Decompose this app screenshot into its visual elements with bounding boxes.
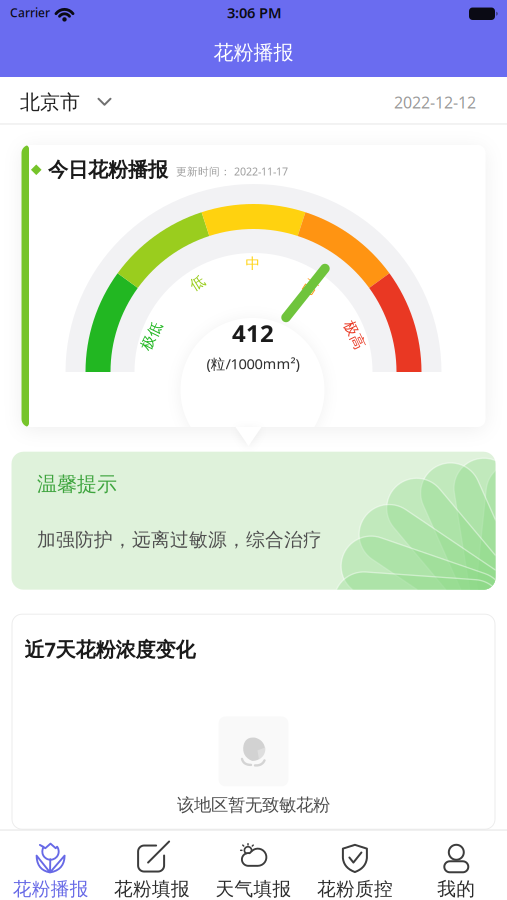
button[interactable]: 我的 xyxy=(406,830,507,900)
staticText: 温馨提示 xyxy=(37,472,117,496)
staticText: (粒/1000mm²) xyxy=(206,354,299,373)
staticText: 412 xyxy=(232,317,274,349)
staticText: 极高 xyxy=(339,326,369,344)
staticText: 近7天花粉浓度变化 xyxy=(24,636,195,662)
staticText: 更新时间： 2022-11-17 xyxy=(176,164,288,178)
staticText: 花粉播报 xyxy=(13,877,89,900)
staticText: 低 xyxy=(190,274,205,292)
staticText: 今日花粉播报 xyxy=(48,157,168,182)
staticText: 2022-12-12 xyxy=(394,92,476,113)
staticText: Carrier xyxy=(10,4,50,20)
staticText: 花粉质控 xyxy=(317,877,393,900)
button[interactable]: 北京市 xyxy=(0,90,111,115)
staticText: 加强防护，远离过敏源，综合治疗 xyxy=(37,528,322,551)
staticText: 该地区暂无致敏花粉 xyxy=(177,794,330,816)
staticText: 花粉填报 xyxy=(114,877,190,900)
staticText: 天气填报 xyxy=(215,877,291,900)
staticText: 3:06 PM xyxy=(227,3,282,22)
staticText: 我的 xyxy=(437,877,475,900)
button[interactable]: 花粉质控 xyxy=(304,830,406,900)
staticText: 极低 xyxy=(136,327,166,345)
button[interactable]: 天气填报 xyxy=(203,830,304,900)
staticText: 花粉播报 xyxy=(213,40,293,65)
staticText: 北京市 xyxy=(20,90,80,115)
button[interactable]: 花粉填报 xyxy=(101,830,203,900)
staticText: 高 xyxy=(303,278,318,296)
button[interactable]: 花粉播报 xyxy=(0,830,101,900)
staticText: 中 xyxy=(245,254,260,272)
